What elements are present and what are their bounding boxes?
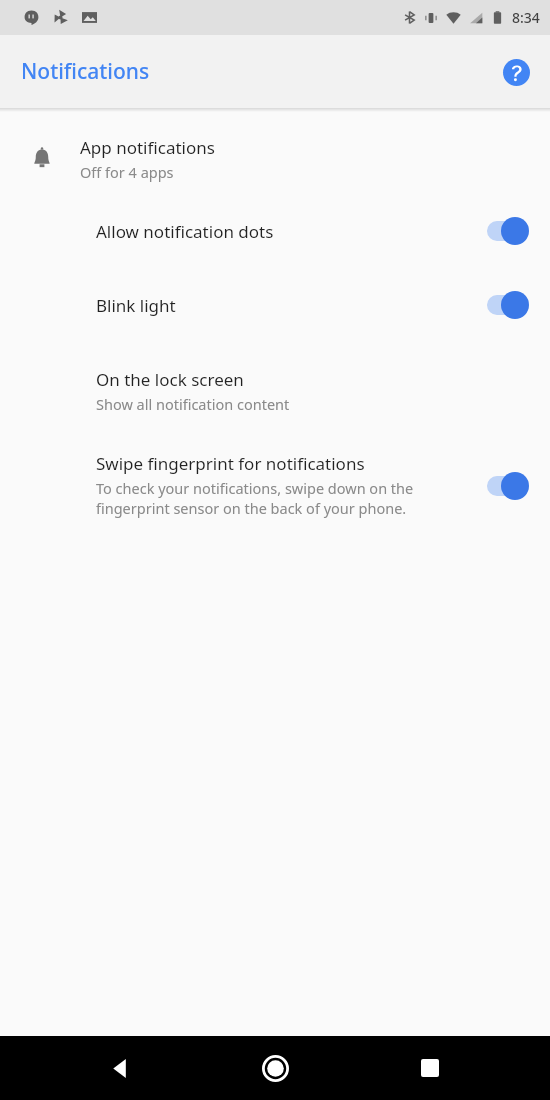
staticText: 8:34 (512, 8, 540, 27)
staticText: Notifications (21, 57, 150, 86)
button[interactable]: Toggle (482, 214, 534, 248)
button[interactable]: Back (98, 1046, 142, 1090)
button[interactable]: Toggle (482, 288, 534, 322)
button[interactable]: Recents (408, 1046, 452, 1090)
staticText: Blink light (96, 294, 482, 317)
staticText: Show all notification content (96, 394, 290, 414)
staticText: App notifications (80, 136, 215, 159)
button[interactable]: Home (252, 1045, 298, 1091)
button[interactable]: Toggle (482, 469, 534, 503)
button[interactable]: On the lock screen (0, 364, 550, 418)
staticText: Swipe fingerprint for notifications (96, 452, 365, 475)
staticText: To check your notifications, swipe down … (96, 478, 468, 519)
button[interactable]: Blink light (0, 282, 550, 328)
staticText: On the lock screen (96, 368, 244, 391)
staticText: Off for 4 apps (80, 162, 174, 182)
button[interactable]: App notifications (0, 130, 550, 188)
button[interactable]: Allow notification dots (0, 208, 550, 254)
button[interactable]: Help (494, 50, 538, 94)
staticText: Allow notification dots (96, 220, 482, 243)
button[interactable]: Swipe fingerprint for notifications (0, 448, 550, 523)
